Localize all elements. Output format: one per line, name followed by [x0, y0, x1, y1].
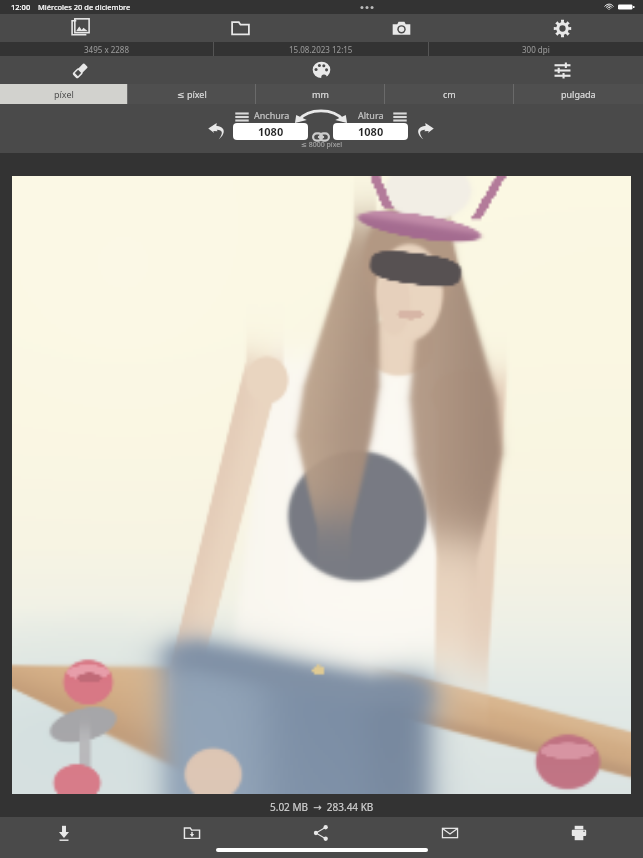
button[interactable]: 1080 — [233, 123, 308, 140]
staticText: 1080 — [258, 124, 284, 139]
staticText: cm — [443, 88, 456, 100]
button[interactable]: píxel — [0, 84, 128, 104]
staticText: Anchura — [254, 109, 290, 121]
button[interactable]: 1080 — [333, 123, 408, 140]
staticText: 12:00 — [11, 2, 31, 12]
staticText: píxel — [54, 88, 74, 100]
button[interactable]: Download — [0, 817, 128, 858]
button[interactable]: Email — [385, 817, 514, 858]
button[interactable]: mm — [256, 84, 385, 104]
staticText: mm — [312, 88, 329, 100]
staticText: 15.08.2023 12:15 — [289, 44, 353, 55]
button[interactable]: cm — [385, 84, 514, 104]
button[interactable]: Palette — [160, 56, 482, 84]
button[interactable]: Undo — [204, 117, 230, 143]
button[interactable]: Camera — [321, 14, 482, 42]
staticText: Altura — [358, 109, 384, 121]
staticText: 1080 — [358, 124, 384, 139]
button[interactable]: Eraser — [0, 56, 160, 84]
staticText: 300 dpi — [522, 44, 550, 55]
button[interactable]: Link aspect ratio — [308, 124, 334, 142]
button[interactable]: ≤ píxel — [128, 84, 256, 104]
staticText: ≤ 8000 píxel — [301, 140, 342, 150]
staticText: Miércoles 20 de diciembre — [38, 2, 131, 12]
button[interactable]: Photo library — [0, 14, 160, 42]
button[interactable]: Save to folder — [128, 817, 256, 858]
button[interactable]: Settings — [482, 14, 643, 42]
button[interactable]: Redo — [411, 117, 437, 143]
button[interactable]: Share — [256, 817, 385, 858]
button[interactable]: Adjust — [482, 56, 643, 84]
staticText: 5.02 MB → 283.44 KB — [270, 800, 374, 814]
staticText: pulgada — [561, 88, 596, 100]
staticText: ≤ píxel — [177, 88, 207, 100]
button[interactable]: Print — [514, 817, 643, 858]
staticText: 3495 x 2288 — [84, 44, 129, 55]
button[interactable]: Open folder — [160, 14, 321, 42]
button[interactable]: pulgada — [514, 84, 643, 104]
